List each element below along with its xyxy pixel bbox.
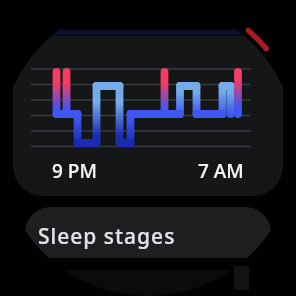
- button[interactable]: [25, 207, 271, 258]
- staticText: 9 PM: [52, 158, 97, 184]
- staticText: Sleep stages: [38, 222, 176, 251]
- button[interactable]: [13, 36, 283, 196]
- staticText: 7 AM: [198, 158, 244, 184]
